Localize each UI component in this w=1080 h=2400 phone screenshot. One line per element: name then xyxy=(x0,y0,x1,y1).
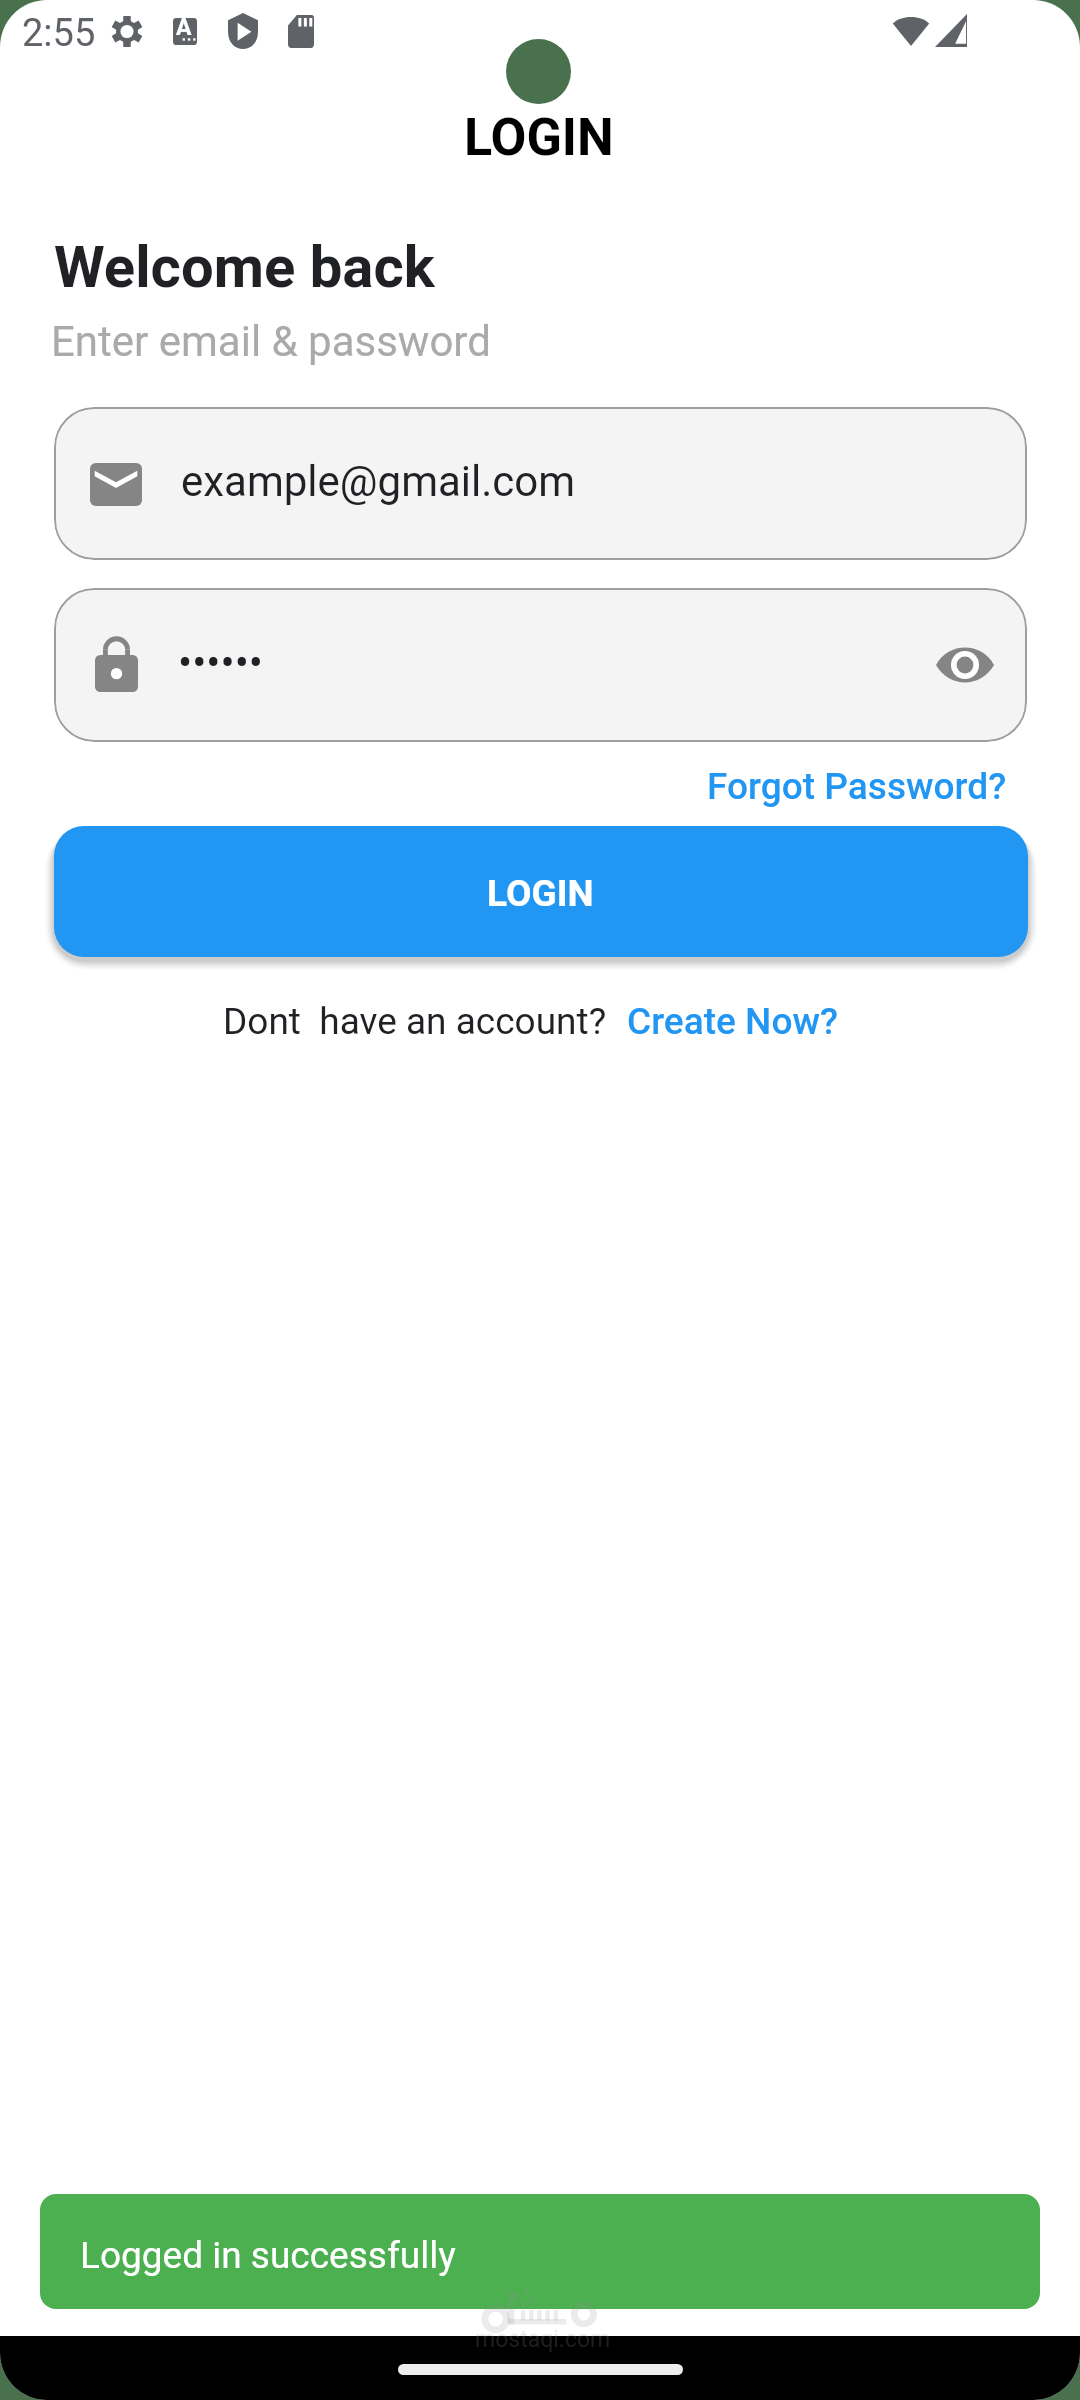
staticText: Logged in successfully xyxy=(80,2234,456,2277)
staticText: Welcome back xyxy=(54,233,435,301)
button[interactable] xyxy=(620,996,844,1050)
button[interactable] xyxy=(54,826,1028,957)
button[interactable]: Show password xyxy=(930,630,1000,700)
button[interactable] xyxy=(40,2194,1040,2309)
staticText: LOGIN xyxy=(487,872,594,915)
staticText: Dont have an account? xyxy=(223,1000,607,1043)
button[interactable] xyxy=(54,407,1027,560)
staticText: example@gmail.com xyxy=(181,457,576,506)
button[interactable] xyxy=(700,762,1018,814)
staticText: •••••• xyxy=(178,638,264,687)
staticText: mostaqi.com xyxy=(475,2326,611,2353)
staticText: 2:55 xyxy=(22,11,96,56)
staticText: A xyxy=(176,14,192,41)
staticText: Create Now? xyxy=(627,1000,838,1043)
staticText: Forgot Password? xyxy=(707,765,1007,808)
staticText: LOGIN xyxy=(464,107,614,168)
staticText: Enter email & password xyxy=(51,317,491,366)
button[interactable] xyxy=(54,588,1027,742)
